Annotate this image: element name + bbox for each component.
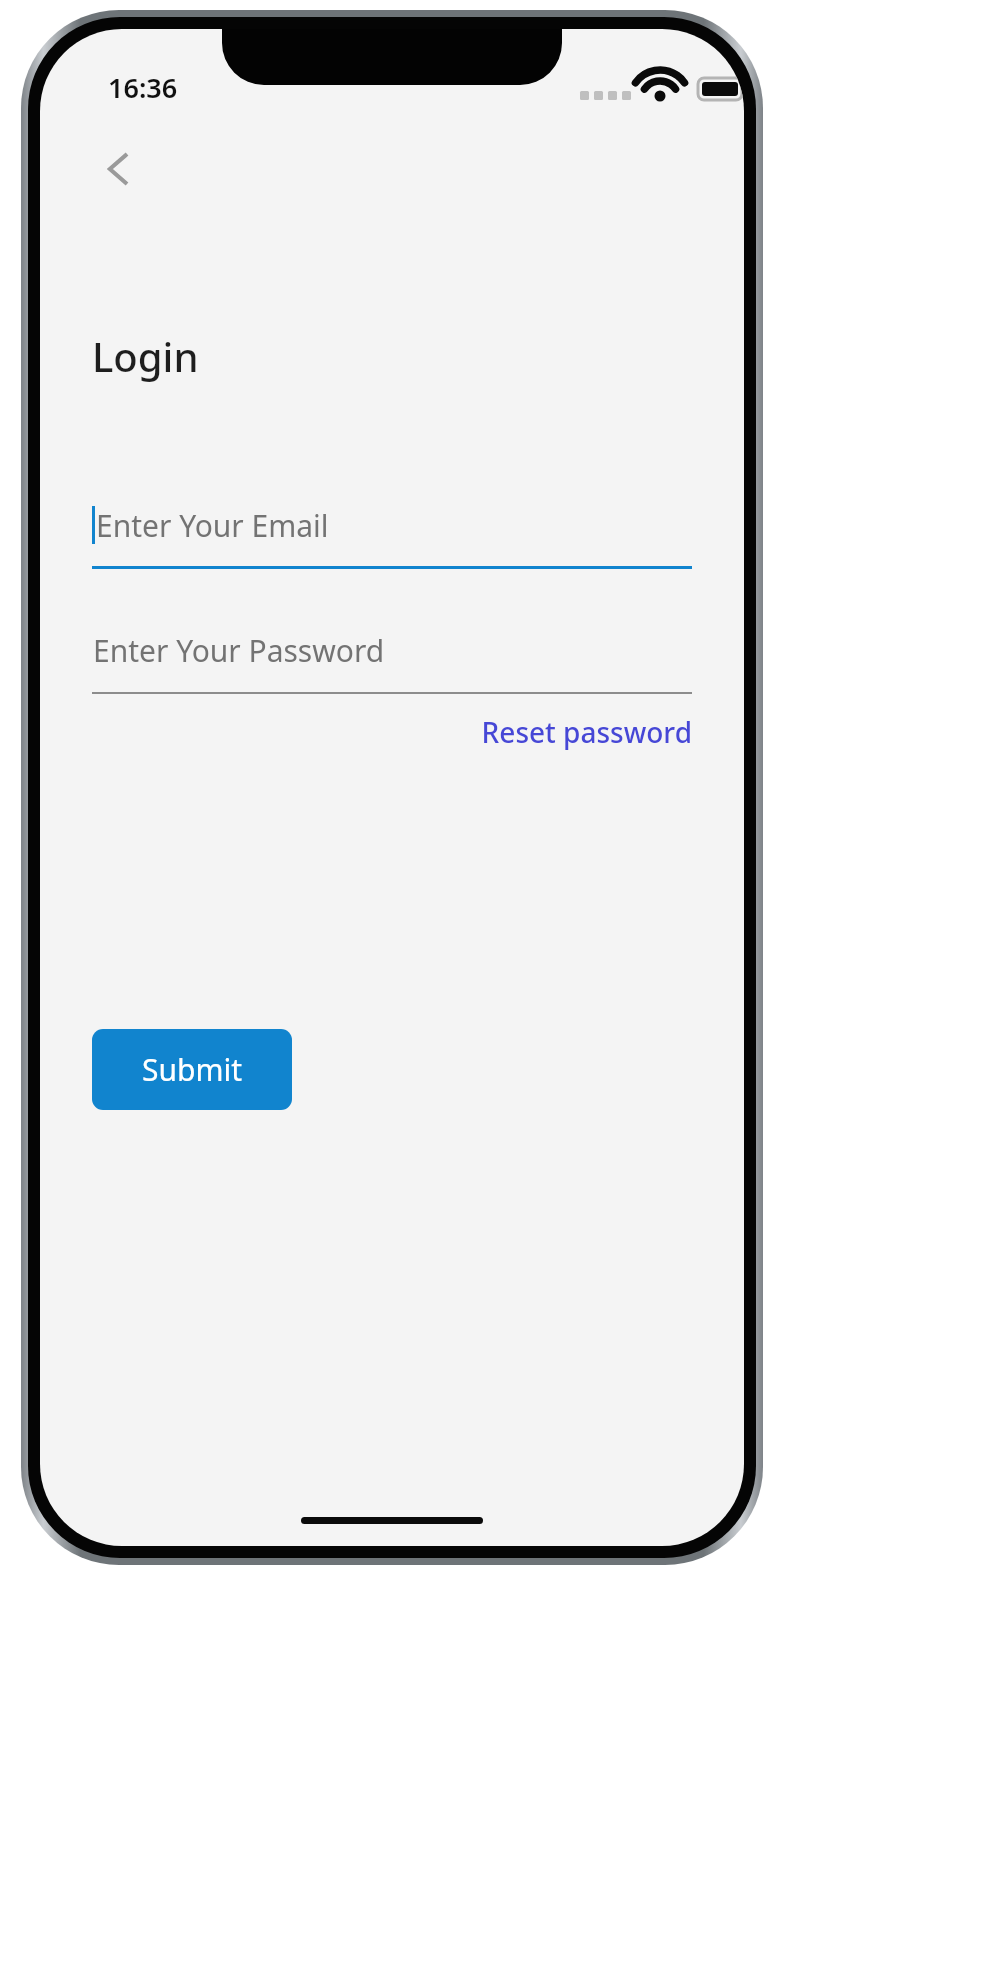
button[interactable]: Back bbox=[88, 139, 148, 199]
staticText: Enter Your Password bbox=[93, 630, 385, 671]
staticText: 16:36 bbox=[108, 69, 178, 106]
button[interactable]: Submit bbox=[92, 1029, 292, 1110]
staticText: Login bbox=[92, 329, 199, 383]
staticText: Reset password bbox=[481, 713, 692, 751]
staticText: Submit bbox=[142, 1049, 243, 1090]
button[interactable]: Enter Your Email bbox=[92, 489, 692, 569]
button[interactable]: Reset password bbox=[422, 704, 692, 760]
staticText: Enter Your Email bbox=[96, 505, 329, 546]
button[interactable]: Enter Your Password bbox=[92, 614, 692, 694]
